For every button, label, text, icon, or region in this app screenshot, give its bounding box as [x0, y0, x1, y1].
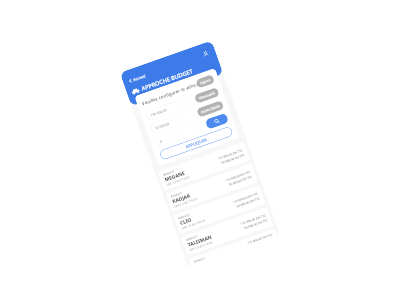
staticText: 50 900,00 DH TTC	[221, 153, 245, 165]
button[interactable]: 100 000,00	[145, 87, 220, 121]
staticText: LIFE 1.5 dCi 110 CH	[181, 218, 206, 230]
staticText: 100 000,00	[150, 108, 167, 117]
staticText: LIFE 1.5 dCi 110 CH	[174, 197, 198, 208]
staticText: TALISMAN	[187, 234, 213, 248]
staticText: RENAULT	[170, 191, 183, 198]
staticText: LIFE 1.5 dCi 110 CH	[189, 240, 213, 252]
staticText: 115 900,00 DH TTC	[232, 191, 259, 204]
staticText: Accueil	[132, 73, 146, 82]
staticText: MEGANE	[164, 170, 186, 183]
staticText: Apport	[200, 77, 211, 85]
button[interactable]: Accueil	[126, 72, 148, 85]
staticText: 50 900,00 DH TTC	[228, 175, 253, 187]
staticText: Mensualité	[198, 91, 216, 100]
button[interactable]: RENAULT	[181, 207, 273, 256]
staticText: RENAULT	[178, 213, 190, 220]
staticText: LIFE 1.5 dCi 110 CH	[166, 175, 190, 187]
staticText: 115 900,00 DH TTC	[217, 148, 243, 161]
button[interactable]: RENAULT	[173, 185, 266, 234]
staticText: 50 000,00	[154, 121, 170, 130]
staticText: 50 900,00 DH TTC	[236, 196, 260, 208]
staticText: 50 900,00 DH TTC	[243, 218, 268, 230]
staticText: Durée (Mois)	[200, 104, 220, 114]
button[interactable]: RENAULT	[166, 163, 258, 212]
button[interactable]: Mensualité	[194, 87, 220, 104]
staticText: APPLIQUER	[185, 137, 208, 149]
staticText: 115 900,00 DH TTC	[247, 232, 273, 244]
staticText: APPROCHE BUDGET	[140, 67, 194, 93]
staticText: Veuillez configurer le véhicule	[141, 79, 204, 107]
staticText: KADJAR	[171, 192, 191, 205]
staticText: RENAULT	[162, 169, 175, 177]
button[interactable]: Durée (Mois)	[196, 100, 224, 118]
button[interactable]: Rechercher	[205, 113, 229, 130]
staticText: RENAULT	[193, 256, 205, 263]
staticText: 115 900,00 DH TTC	[225, 170, 251, 182]
button[interactable]: RENAULT	[189, 228, 277, 267]
staticText: 115 900,00 DH TTC	[240, 213, 266, 226]
button[interactable]: jx	[154, 113, 229, 148]
staticText: jx	[159, 138, 163, 143]
staticText: RENAULT	[185, 234, 198, 242]
button[interactable]: Profil	[200, 48, 212, 60]
button[interactable]: RENAULT	[158, 142, 250, 190]
button[interactable]: 50 000,00	[149, 100, 224, 134]
button[interactable]: Apport	[195, 74, 215, 89]
staticText: CLIO	[179, 216, 192, 227]
button[interactable]: APPLIQUER	[159, 126, 234, 161]
